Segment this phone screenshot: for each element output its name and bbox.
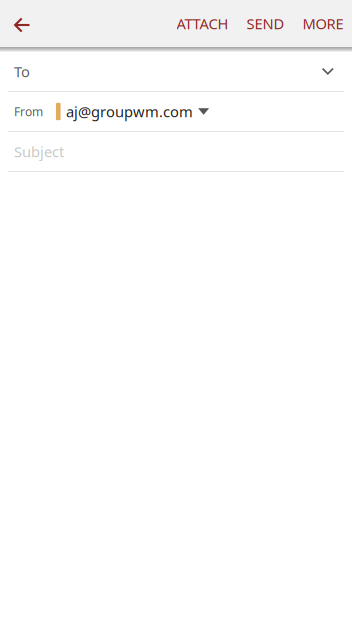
staticText: Subject (14, 142, 64, 161)
button[interactable]: From (0, 92, 352, 131)
button[interactable]: Subject (0, 132, 352, 171)
staticText: aj@groupwm.com (66, 102, 193, 121)
staticText: MORE (302, 14, 343, 33)
button[interactable]: To (0, 52, 352, 91)
staticText: To (14, 62, 30, 81)
button[interactable]: MORE (293, 0, 352, 47)
button[interactable]: ATTACH (167, 0, 237, 47)
staticText: ATTACH (176, 14, 228, 33)
button[interactable]: Back (0, 0, 44, 47)
staticText: SEND (246, 14, 284, 33)
button[interactable]: SEND (237, 0, 293, 47)
staticText: From (14, 103, 43, 119)
